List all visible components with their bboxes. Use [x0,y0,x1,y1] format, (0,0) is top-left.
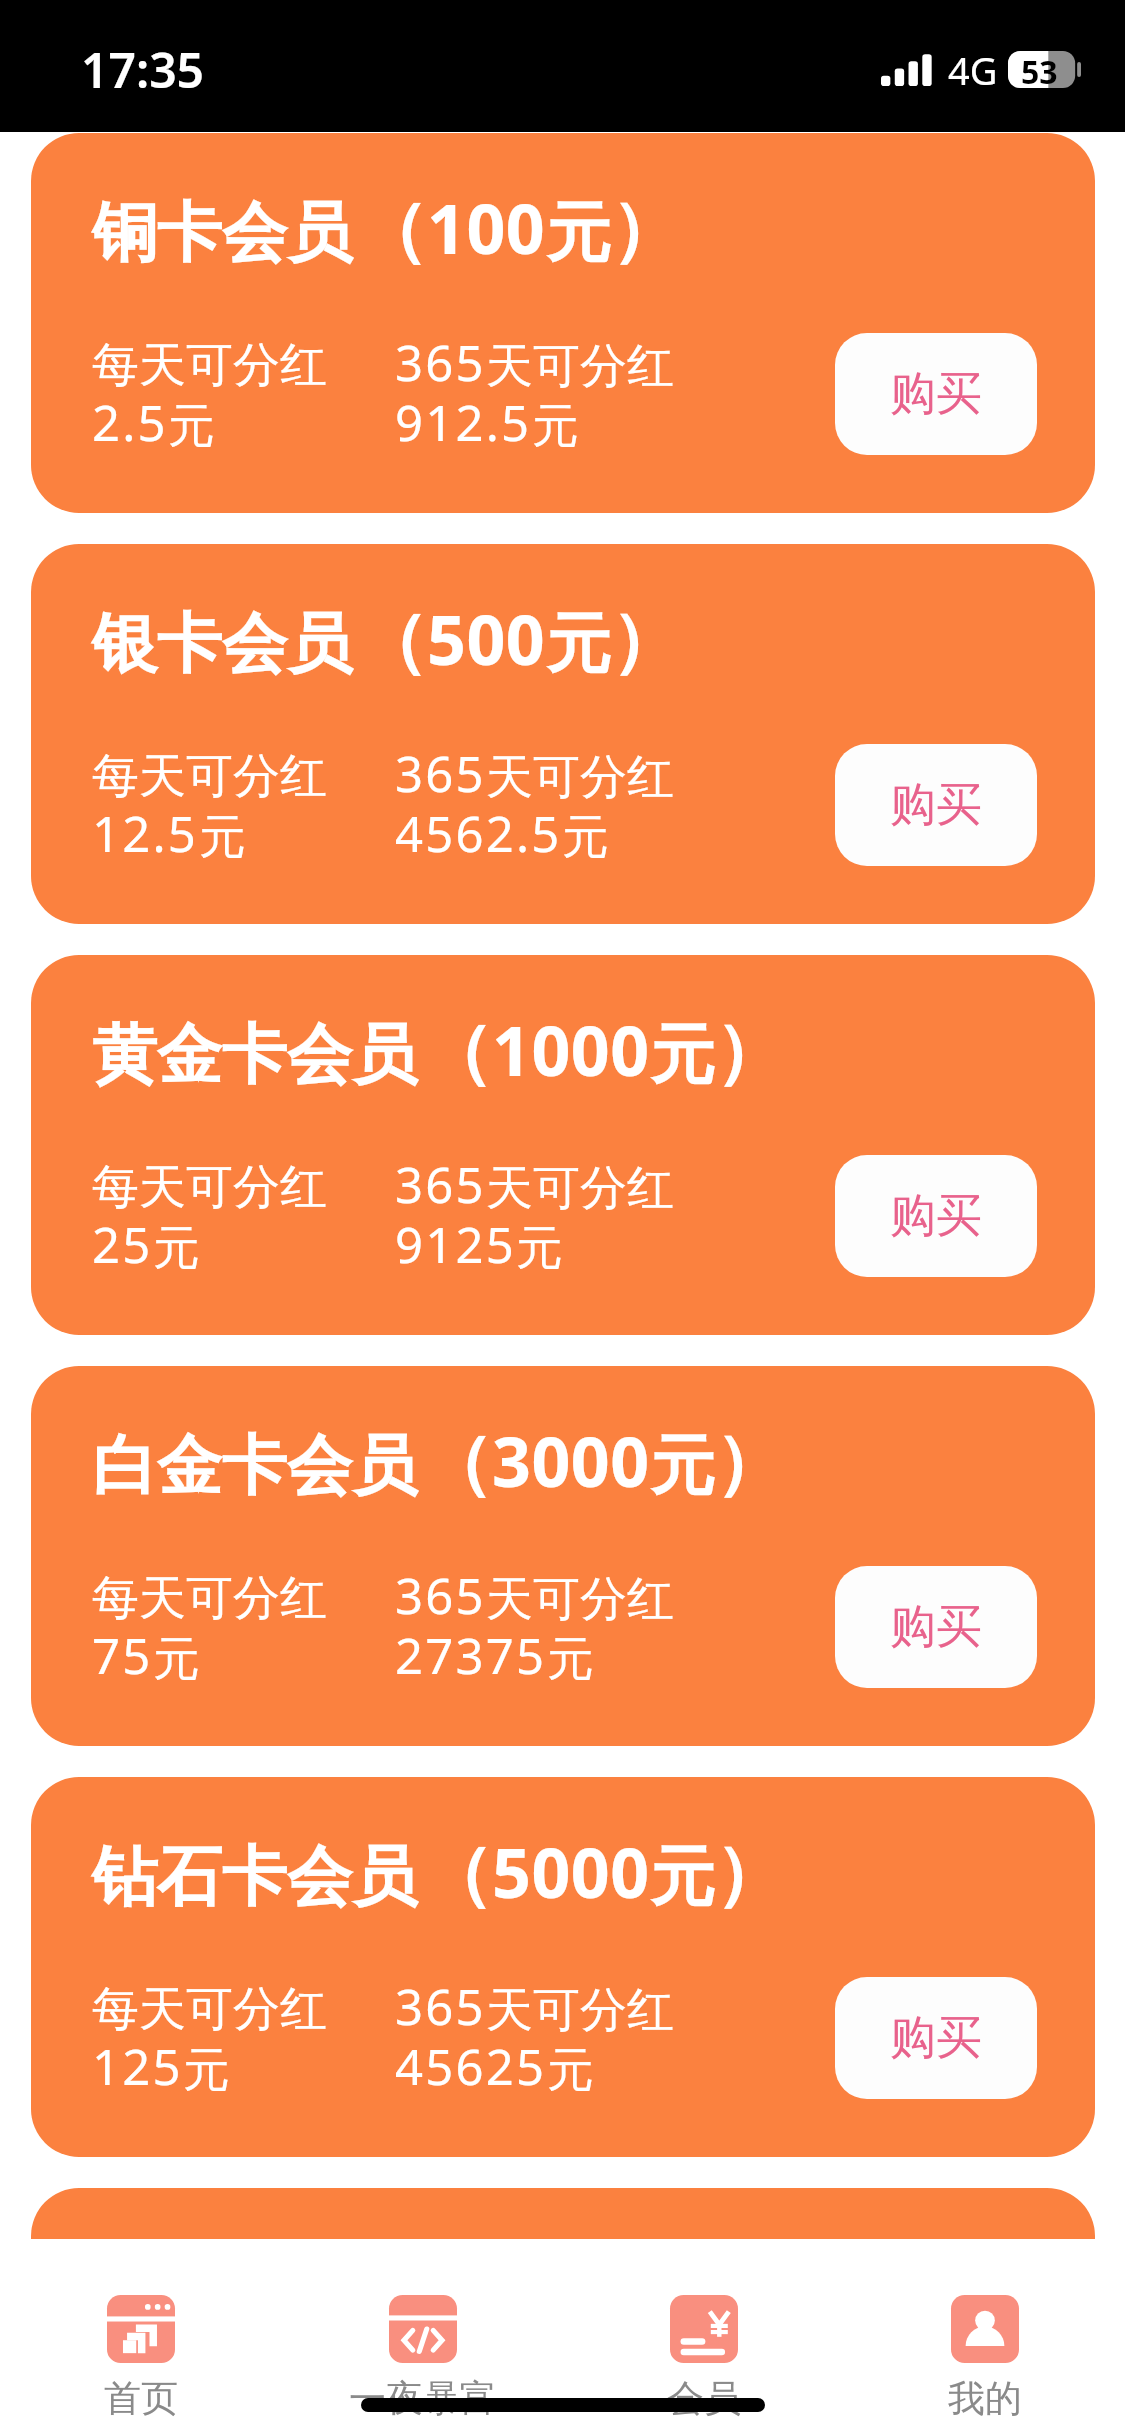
staticText: 天可分红 [486,1159,674,1218]
staticText: 2.5 [92,389,168,456]
staticText: 一夜暴富 [349,2375,497,2422]
staticText: 购买 [890,776,982,834]
staticText: 元 [546,603,611,685]
staticText: 元 [199,808,246,867]
staticText: ） [715,1831,784,1918]
staticText: 27375 [395,1622,547,1689]
staticText: 每天可分红 [92,747,327,806]
button[interactable]: 黄金卡会员 [31,955,1095,1335]
button[interactable]: 白金卡会员 [31,1366,1095,1746]
button[interactable]: 至尊卡会员 [31,2188,1095,2239]
staticText: 元 [153,1630,200,1689]
staticText: 12.5 [92,800,199,867]
button[interactable]: 钻石卡会员 [31,1777,1095,2157]
staticText: 17:35 [81,37,205,102]
staticText: 365 [395,740,486,807]
staticText: 购买 [890,2009,982,2067]
staticText: 100 [427,181,546,274]
staticText: 75 [92,1622,153,1689]
staticText: 365 [395,1151,486,1218]
staticText: 4G [948,44,998,96]
staticText: （ [423,1420,492,1507]
staticText: 天可分红 [486,748,674,807]
staticText: 125 [92,2033,183,2100]
button[interactable]: 银卡会员 [31,544,1095,924]
staticText: 912.5 [395,389,532,456]
staticText: ） [611,187,680,274]
other: 我的 [951,2295,1019,2363]
staticText: 天可分红 [486,1981,674,2040]
staticText: 黄金卡会员 [92,1014,417,1096]
staticText: 购买 [890,1598,982,1656]
other: 首页 [107,2295,175,2363]
button[interactable]: 首页 [0,2239,282,2436]
staticText: （ [423,1831,492,1918]
staticText: 元 [532,397,579,456]
staticText: 会员 [667,2375,741,2422]
staticText: 365 [395,1973,486,2040]
staticText: 365 [395,329,486,396]
other: 一夜暴富 [389,2295,457,2363]
staticText: 3000 [492,1414,650,1507]
button[interactable]: 购买 [835,1977,1037,2099]
staticText: 元 [547,2041,594,2100]
button[interactable]: 购买 [835,333,1037,455]
staticText: 25 [92,1211,153,1278]
staticText: 我的 [948,2375,1022,2422]
staticText: 500 [427,592,546,685]
staticText: 元 [516,1219,563,1278]
button[interactable]: 购买 [835,744,1037,866]
staticText: 天可分红 [486,1570,674,1629]
staticText: 白金卡会员 [92,1425,417,1507]
staticText: （ [358,598,427,685]
button[interactable]: 购买 [835,1155,1037,1277]
staticText: 1000 [492,1003,650,1096]
button[interactable]: 会员 [563,2239,844,2436]
staticText: 元 [562,808,609,867]
staticText: 钻石卡会员 [92,1836,417,1918]
staticText: 元 [547,1630,594,1689]
staticText: （ [358,187,427,274]
staticText: 每天可分红 [92,336,327,395]
staticText: 每天可分红 [92,1569,327,1628]
button[interactable]: 铜卡会员 [31,133,1095,513]
staticText: 每天可分红 [92,1980,327,2039]
staticText: 4562.5 [395,800,562,867]
staticText: ） [611,598,680,685]
staticText: 元 [183,2041,230,2100]
staticText: 9125 [395,1211,516,1278]
staticText: 铜卡会员 [92,192,352,274]
staticText: 元 [650,1014,715,1096]
staticText: （ [423,1009,492,1096]
staticText: 元 [168,397,215,456]
staticText: 银卡会员 [92,603,352,685]
staticText: ） [715,1420,784,1507]
staticText: 元 [546,192,611,274]
button[interactable]: 一夜暴富 [282,2239,563,2436]
staticText: ） [715,1009,784,1096]
staticText: 45625 [395,2033,547,2100]
staticText: 每天可分红 [92,1158,327,1217]
staticText: 元 [650,1425,715,1507]
other: 会员 [670,2295,738,2363]
staticText: 365 [395,1562,486,1629]
staticText: 天可分红 [486,337,674,396]
staticText: 首页 [104,2375,178,2422]
staticText: 购买 [890,365,982,423]
staticText: 5000 [492,1825,650,1918]
button[interactable]: 购买 [835,1566,1037,1688]
staticText: 元 [650,1836,715,1918]
staticText: 购买 [890,1187,982,1245]
button[interactable]: 我的 [844,2239,1125,2436]
staticText: 53 [1021,50,1058,87]
staticText: 元 [153,1219,200,1278]
